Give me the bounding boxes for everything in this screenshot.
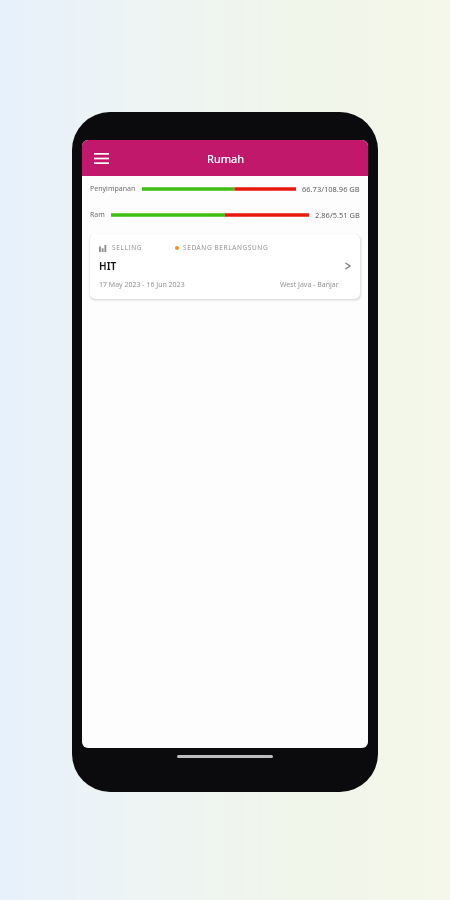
staticText: Rumah xyxy=(207,151,244,166)
staticText: Penyimpanan xyxy=(90,184,136,194)
staticText: 2.86/5.51 GB xyxy=(315,210,360,220)
staticText: Ram xyxy=(90,210,105,220)
staticText: SEDANG BERLANGSUNG xyxy=(183,243,269,252)
staticText: SELLING xyxy=(112,243,143,252)
button[interactable]: Open navigation menu xyxy=(88,145,114,171)
staticText: 66.73/108.96 GB xyxy=(302,184,360,194)
staticText: West Java - Banjar xyxy=(280,280,339,290)
staticText: HIT xyxy=(99,259,117,273)
button[interactable]: SELLING xyxy=(90,234,360,299)
staticText: 17 May 2023 - 16 Jun 2023 xyxy=(99,280,185,290)
